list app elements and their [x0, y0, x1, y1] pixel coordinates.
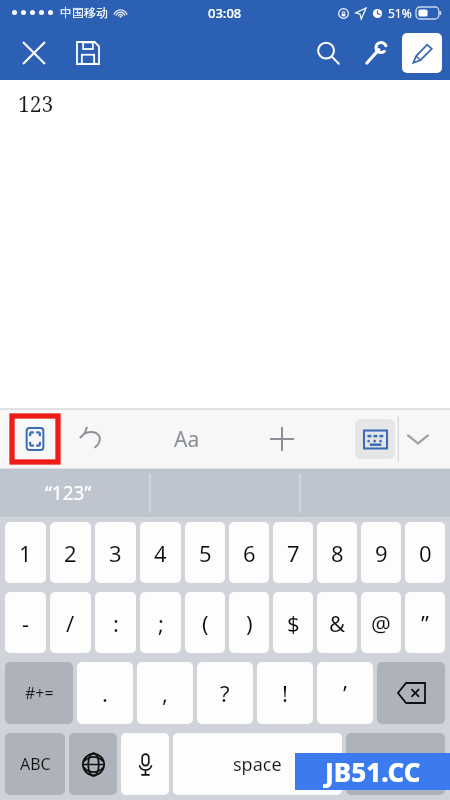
button[interactable]: &	[317, 592, 357, 653]
button[interactable]: /	[50, 592, 91, 653]
button[interactable]: Edit	[402, 33, 442, 73]
staticText: ;	[158, 608, 164, 638]
staticText: @	[371, 608, 391, 638]
button[interactable]: 7	[273, 522, 313, 583]
staticText: 4	[154, 538, 167, 568]
staticText: 2	[64, 538, 77, 568]
button[interactable]: Close	[12, 31, 56, 75]
staticText: 8	[331, 538, 344, 568]
staticText: &	[329, 608, 346, 638]
button[interactable]: 1	[5, 522, 46, 583]
button[interactable]: ?	[197, 662, 253, 724]
staticText: 9	[375, 538, 388, 568]
button[interactable]: 9	[361, 522, 401, 583]
button[interactable]: 4	[140, 522, 181, 583]
staticText: 3	[109, 538, 122, 568]
button[interactable]: 3	[95, 522, 136, 583]
button[interactable]: #+=	[5, 662, 73, 724]
button[interactable]: Backspace	[377, 662, 445, 724]
staticText: ABC	[20, 753, 51, 775]
staticText: ?	[220, 678, 230, 708]
staticText: (	[202, 608, 209, 638]
button[interactable]: Keyboard	[355, 419, 395, 459]
button[interactable]: ;	[140, 592, 181, 653]
staticText: $	[287, 608, 300, 638]
button[interactable]: :	[95, 592, 136, 653]
button[interactable]: .	[77, 662, 133, 724]
button[interactable]: return	[346, 733, 445, 795]
button[interactable]: Change language	[69, 733, 117, 795]
button[interactable]: Full screen	[12, 416, 58, 462]
staticText: Aa	[174, 425, 200, 454]
staticText: 5	[199, 538, 212, 568]
button[interactable]: 8	[317, 522, 357, 583]
staticText: /	[66, 608, 75, 638]
staticText: 0	[419, 538, 432, 568]
button[interactable]: Tools	[354, 31, 398, 75]
button[interactable]: 5	[185, 522, 225, 583]
button[interactable]: (	[185, 592, 225, 653]
button[interactable]: -	[5, 592, 46, 653]
button[interactable]: Hide keyboard	[396, 417, 440, 461]
button[interactable]: Search	[306, 31, 350, 75]
button[interactable]: ,	[137, 662, 193, 724]
button[interactable]: 6	[229, 522, 269, 583]
button[interactable]: Font	[165, 417, 209, 461]
button[interactable]: space	[173, 733, 342, 795]
staticText: ,	[162, 678, 168, 708]
staticText: !	[282, 678, 288, 708]
staticText: 03:08	[208, 4, 242, 22]
button[interactable]: Undo	[70, 417, 114, 461]
staticText: 6	[243, 538, 256, 568]
button[interactable]: @	[361, 592, 401, 653]
button[interactable]: 0	[405, 522, 445, 583]
staticText: “123”	[45, 480, 92, 506]
staticText: )	[246, 608, 253, 638]
staticText: -	[22, 608, 30, 638]
button[interactable]: ”	[405, 592, 445, 653]
staticText: 中国移动	[60, 5, 108, 20]
button[interactable]: !	[257, 662, 313, 724]
staticText: space	[233, 752, 282, 777]
button[interactable]: )	[229, 592, 269, 653]
staticText: 1	[19, 538, 32, 568]
staticText: 51%	[388, 5, 412, 21]
button[interactable]: ABC	[5, 733, 65, 795]
staticText: ’	[343, 678, 347, 708]
staticText: return	[372, 753, 420, 775]
staticText: .	[102, 678, 108, 708]
button[interactable]: Insert	[260, 417, 304, 461]
staticText: 7	[287, 538, 300, 568]
staticText: ”	[421, 608, 429, 638]
staticText: JB51.CC	[325, 754, 421, 789]
staticText: :	[113, 608, 119, 638]
button[interactable]: 2	[50, 522, 91, 583]
button[interactable]: Dictate	[121, 733, 169, 795]
button[interactable]: Save	[66, 31, 110, 75]
staticText: 123	[18, 90, 54, 119]
staticText: #+=	[25, 682, 54, 704]
button[interactable]: ’	[317, 662, 373, 724]
button[interactable]: $	[273, 592, 313, 653]
